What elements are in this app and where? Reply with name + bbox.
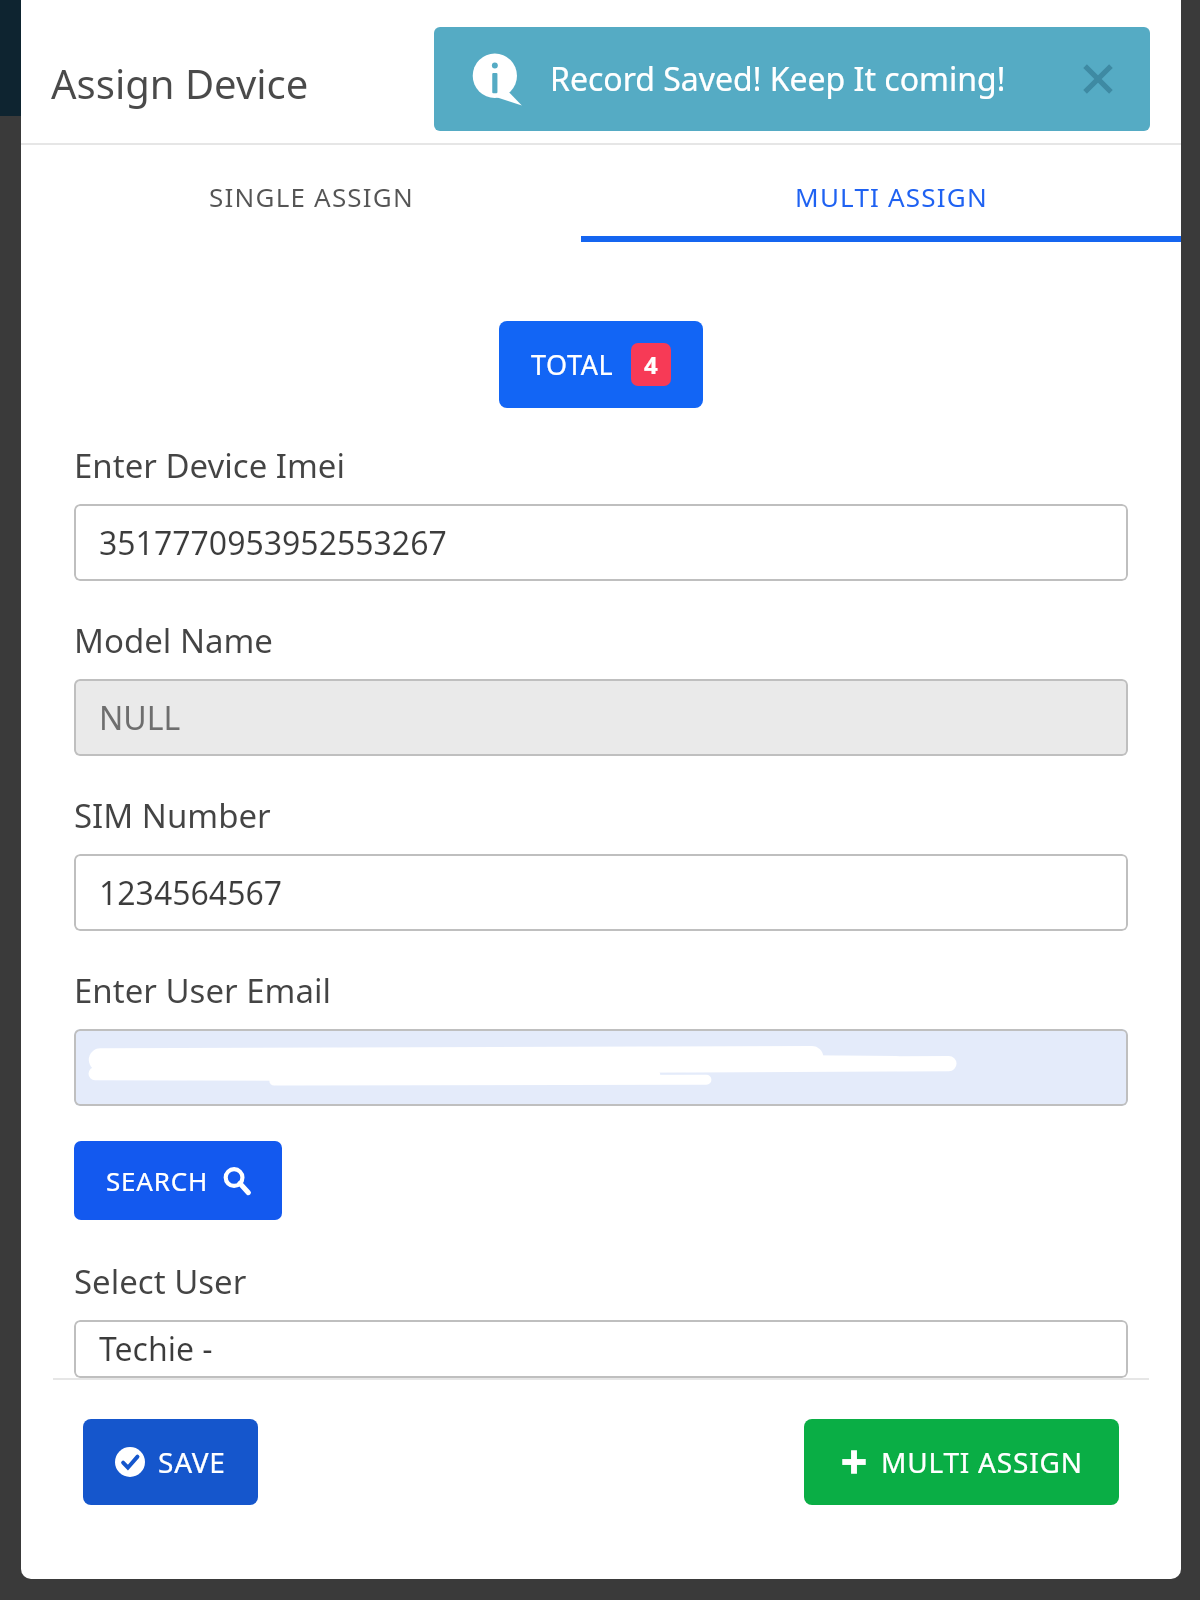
button[interactable]: MULTI ASSIGN: [804, 1419, 1119, 1505]
button[interactable]: Record Saved! Keep It coming!: [434, 27, 1150, 131]
button[interactable]: 1234564567: [74, 854, 1128, 931]
button[interactable]: 3517770953952553267: [74, 504, 1128, 581]
staticText: Enter User Email: [74, 968, 331, 1013]
staticText: Model Name: [74, 618, 273, 663]
button[interactable]: NULL: [74, 679, 1128, 756]
button[interactable]: Close notification: [1072, 53, 1124, 105]
button[interactable]: SAVE: [83, 1419, 258, 1505]
staticText: Enter Device Imei: [74, 443, 345, 488]
staticText: NULL: [99, 696, 181, 740]
staticText: SIM Number: [74, 793, 271, 838]
staticText: 3517770953952553267: [99, 521, 447, 565]
button[interactable]: SINGLE ASSIGN: [21, 145, 601, 247]
button[interactable]: [74, 1029, 1128, 1106]
button[interactable]: MULTI ASSIGN: [601, 145, 1181, 247]
staticText: SAVE: [158, 1443, 226, 1481]
staticText: Select User: [74, 1259, 247, 1304]
staticText: 1234564567: [99, 871, 283, 915]
staticText: 4: [644, 348, 658, 381]
staticText: Record Saved! Keep It coming!: [550, 57, 1072, 101]
staticText: Assign Device: [51, 56, 309, 110]
staticText: SEARCH: [106, 1163, 209, 1198]
staticText: TOTAL: [531, 346, 614, 383]
staticText: MULTI ASSIGN: [795, 179, 988, 214]
staticText: MULTI ASSIGN: [881, 1443, 1083, 1481]
staticText: SINGLE ASSIGN: [209, 179, 414, 214]
button[interactable]: Techie -: [74, 1320, 1128, 1378]
staticText: Techie -: [99, 1327, 213, 1371]
button[interactable]: TOTAL: [499, 321, 703, 408]
button[interactable]: SEARCH: [74, 1141, 282, 1220]
